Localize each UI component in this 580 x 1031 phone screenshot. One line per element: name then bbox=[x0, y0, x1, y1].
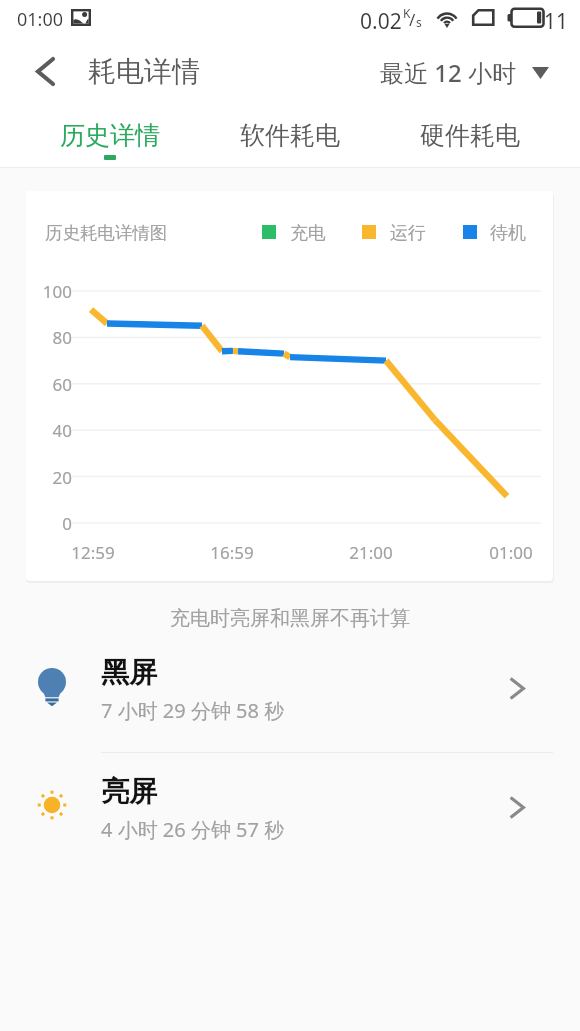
button[interactable]: 硬件耗电 bbox=[380, 94, 560, 167]
staticText: 40 bbox=[28, 419, 72, 442]
staticText: 历史详情 bbox=[60, 120, 160, 151]
staticText: 充电时亮屏和黑屏不再计算 bbox=[0, 606, 580, 631]
staticText: 16:59 bbox=[192, 541, 272, 564]
staticText: 0.02 bbox=[360, 7, 402, 36]
button[interactable]: 亮屏 bbox=[0, 764, 580, 871]
staticText: 运行 bbox=[390, 222, 426, 245]
staticText: 80 bbox=[28, 326, 72, 349]
staticText: 01:00 bbox=[17, 7, 64, 32]
staticText: 20 bbox=[28, 466, 72, 489]
staticText: 历史耗电详情图 bbox=[45, 222, 168, 244]
button[interactable]: 最近 12 小时 bbox=[372, 50, 557, 95]
staticText: 21:00 bbox=[331, 541, 411, 564]
staticText: 11 bbox=[544, 7, 569, 36]
staticText: 12:59 bbox=[53, 541, 133, 564]
staticText: 01:00 bbox=[471, 541, 551, 564]
button[interactable]: 历史详情 bbox=[20, 94, 200, 167]
button[interactable]: 软件耗电 bbox=[200, 94, 380, 167]
staticText: 黑屏 bbox=[101, 655, 157, 690]
staticText: 4 小时 26 分钟 57 秒 bbox=[101, 816, 285, 843]
other: Screenshot bbox=[71, 9, 92, 27]
staticText: 100 bbox=[28, 280, 72, 303]
staticText: 耗电详情 bbox=[88, 54, 200, 89]
staticText: 0 bbox=[28, 512, 72, 535]
staticText: 60 bbox=[28, 373, 72, 396]
staticText: 7 小时 29 分钟 58 秒 bbox=[101, 697, 285, 724]
staticText: 待机 bbox=[490, 222, 526, 245]
staticText: 软件耗电 bbox=[240, 120, 340, 151]
staticText: 充电 bbox=[290, 222, 326, 245]
staticText: 亮屏 bbox=[101, 774, 157, 809]
other: Open details bbox=[496, 667, 538, 709]
staticText: 硬件耗电 bbox=[420, 120, 520, 151]
staticText: / bbox=[409, 8, 416, 31]
button[interactable]: Back bbox=[24, 49, 67, 93]
staticText: 最近 12 小时 bbox=[380, 56, 516, 89]
staticText: K bbox=[403, 5, 411, 21]
button[interactable]: 黑屏 bbox=[0, 645, 580, 752]
staticText: s bbox=[416, 14, 422, 30]
other: Open details bbox=[496, 786, 538, 828]
